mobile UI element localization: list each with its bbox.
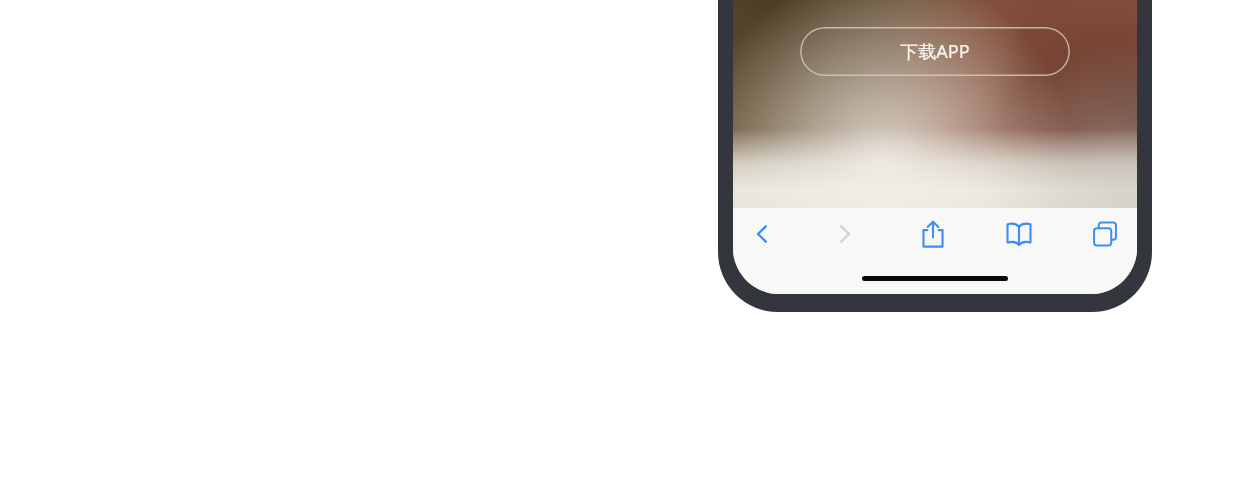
- button[interactable]: Back: [733, 208, 791, 260]
- button[interactable]: 下载APP: [800, 27, 1070, 76]
- button[interactable]: Bookmarks: [990, 208, 1048, 260]
- button[interactable]: Tabs: [1076, 208, 1134, 260]
- button[interactable]: Forward: [816, 208, 874, 260]
- staticText: 下载APP: [900, 39, 970, 64]
- button[interactable]: Share: [904, 208, 962, 260]
